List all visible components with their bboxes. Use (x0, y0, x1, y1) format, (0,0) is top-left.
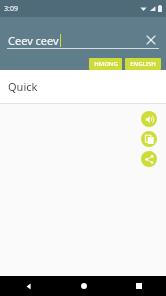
button[interactable]: Share (141, 151, 157, 167)
staticText: HMONG (94, 60, 118, 68)
button[interactable]: ENGLISH (125, 58, 161, 70)
button[interactable]: Speak (141, 111, 157, 127)
button[interactable]: Clear text (143, 32, 159, 48)
button[interactable]: Quick (0, 70, 166, 103)
staticText: 3:09 (4, 4, 18, 14)
staticText: Ceev ceev (8, 33, 59, 48)
staticText: ENGLISH (130, 60, 156, 68)
button[interactable]: Home (56, 276, 111, 296)
button[interactable]: HMONG (89, 58, 122, 70)
staticText: Quick (8, 79, 38, 94)
button[interactable]: Ceev ceev (8, 32, 159, 48)
button[interactable]: Copy (141, 131, 157, 147)
button[interactable]: Back (0, 276, 56, 296)
button[interactable]: Recent apps (111, 276, 166, 296)
